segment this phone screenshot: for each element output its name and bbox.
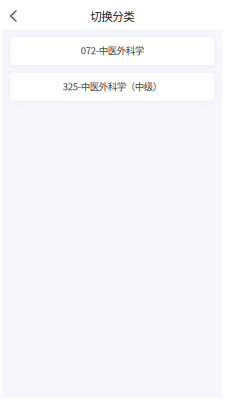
- staticText: 072-中医外科学: [81, 43, 144, 57]
- staticText: 325-中医外科学（中级）: [63, 79, 162, 93]
- button[interactable]: Back: [2, 0, 24, 29]
- staticText: 切换分类: [90, 8, 134, 24]
- button[interactable]: 325-中医外科学（中级）: [10, 73, 214, 101]
- button[interactable]: 072-中医外科学: [10, 37, 214, 65]
